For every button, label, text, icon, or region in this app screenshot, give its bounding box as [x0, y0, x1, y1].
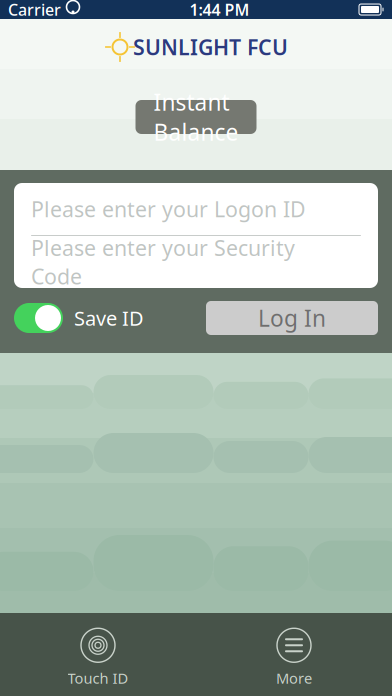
staticText: Please enter your Security Code	[31, 234, 295, 290]
staticText: 1:44 PM	[189, 0, 249, 20]
staticText: Please enter your Logon ID	[31, 195, 306, 223]
staticText: SUNLIGHT FCU	[133, 33, 288, 61]
staticText: Save ID	[74, 305, 144, 331]
staticText: Touch ID	[67, 668, 128, 688]
button[interactable]: Instant Balance	[135, 100, 256, 134]
staticText: More	[276, 668, 312, 688]
button[interactable]: More	[196, 626, 392, 688]
button[interactable]: Save ID	[14, 303, 144, 333]
button[interactable]: Touch ID	[0, 626, 196, 688]
staticText: Log In	[258, 303, 326, 333]
staticText: Instant Balance	[153, 87, 238, 147]
button[interactable]: Please enter your Logon ID	[14, 183, 378, 235]
staticText: Carrier	[8, 0, 61, 20]
button[interactable]: Log In	[206, 301, 378, 335]
button[interactable]: Please enter your Security Code	[14, 236, 378, 288]
